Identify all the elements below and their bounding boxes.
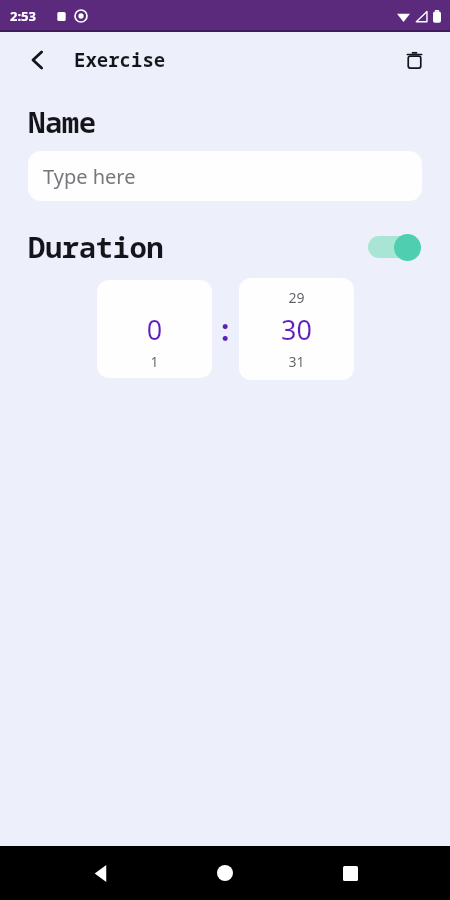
button[interactable]: Duration toggle (366, 230, 422, 264)
button[interactable]: Type here (28, 151, 422, 201)
button[interactable]: 29 (239, 278, 354, 380)
staticText: : (221, 309, 230, 350)
staticText: 31 (239, 352, 354, 371)
staticText: 0 (97, 311, 212, 348)
staticText: Type here (43, 163, 136, 190)
button[interactable]: 0 (97, 280, 212, 378)
button[interactable]: Back (77, 849, 125, 897)
staticText: 29 (239, 288, 354, 307)
staticText: 30 (239, 311, 354, 348)
staticText: 1 (97, 352, 212, 371)
button[interactable]: Recent apps (326, 849, 374, 897)
staticText: Duration (28, 227, 164, 266)
staticText: Exercise (74, 47, 166, 73)
button[interactable]: Back (20, 42, 56, 78)
staticText: Name (28, 102, 96, 141)
button[interactable]: Delete (394, 40, 434, 80)
button[interactable]: Home (201, 849, 249, 897)
staticText: 2:53 (10, 7, 36, 25)
